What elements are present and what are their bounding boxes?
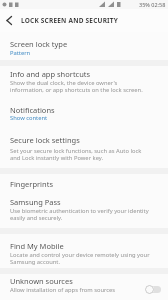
staticText: Unknown sources — [10, 276, 73, 286]
staticText: Locate and control your device remotely … — [10, 251, 150, 259]
staticText: Info and app shortcuts — [10, 69, 91, 79]
staticText: Samsung Pass — [10, 197, 61, 207]
staticText: Notifications — [10, 105, 55, 115]
staticText: Pattern — [10, 49, 31, 57]
button[interactable]: Samsung Pass — [0, 192, 168, 228]
button[interactable]: Find My Mobile — [0, 234, 168, 268]
staticText: Set your secure lock functions, such as … — [10, 147, 142, 155]
staticText: Show content — [10, 114, 48, 122]
staticText: information, or app shortcuts on the loc… — [10, 86, 143, 94]
button[interactable]: Screen lock type — [0, 36, 168, 60]
button[interactable]: Info and app shortcuts — [0, 66, 168, 100]
staticText: Fingerprints — [10, 179, 53, 189]
button[interactable]: LOCK SCREEN AND SECURITY — [0, 9, 168, 32]
staticText: Use biometric authentication to verify y… — [10, 207, 149, 215]
staticText: and Lock instantly with Power key. — [10, 154, 104, 162]
button[interactable]: Fingerprints — [0, 174, 168, 192]
staticText: Find My Mobile — [10, 241, 64, 251]
staticText: LOCK SCREEN AND SECURITY — [21, 16, 119, 25]
staticText: Screen lock type — [10, 39, 68, 49]
button[interactable]: Secure lock settings — [0, 128, 168, 168]
button[interactable]: Notifications — [0, 100, 168, 128]
staticText: Samsung account. — [10, 258, 61, 266]
staticText: Show the dual clock, the device owner's — [10, 79, 118, 87]
button[interactable]: Unknown sources — [0, 274, 168, 300]
staticText: easily and securely. — [10, 214, 63, 222]
staticText: Secure lock settings — [10, 135, 80, 145]
staticText: Allow installation of apps from sources — [10, 286, 116, 294]
staticText: 35% 02:58 — [139, 1, 166, 8]
